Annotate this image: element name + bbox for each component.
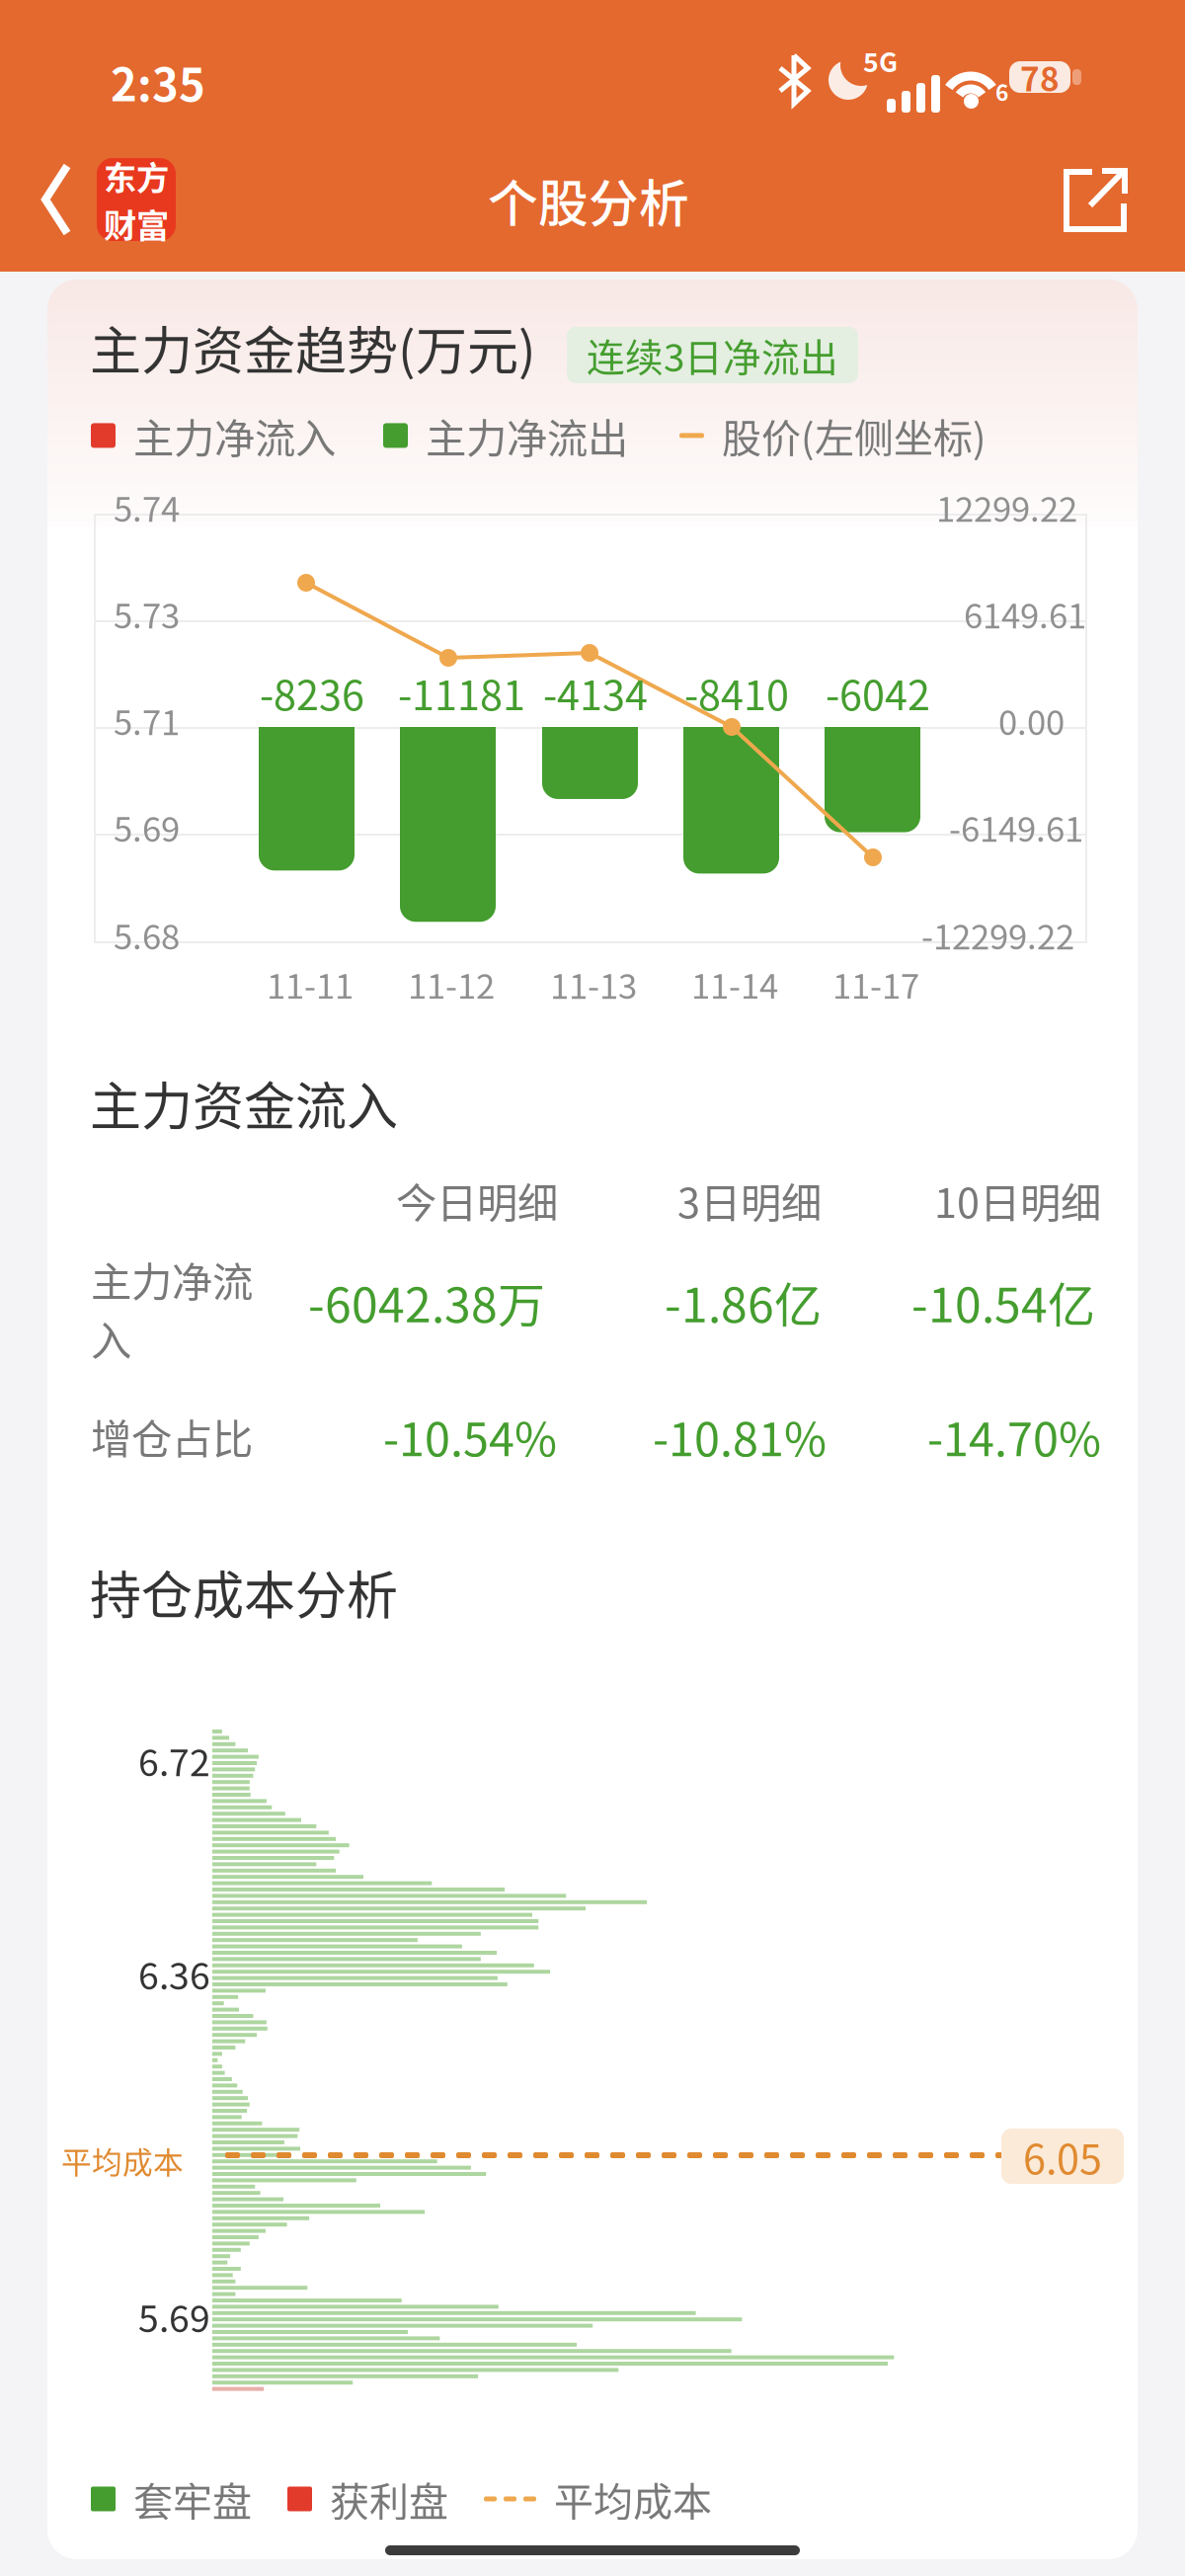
staticText: 5.68 [114,910,180,959]
staticText: 78 [1020,53,1060,101]
staticText: -11181 [398,663,525,722]
staticText: 财富 [104,200,169,247]
staticText: 东方 [104,152,169,200]
staticText: 6.05 [1023,2127,1102,2186]
staticText: 11-14 [691,959,778,1009]
button[interactable]: Share [0,128,1185,272]
staticText: 5.71 [114,695,180,745]
staticText: -6042 [826,663,930,722]
staticText: 6149.61 [964,589,1086,638]
staticText: 0.00 [998,695,1065,745]
button[interactable]: Back [0,128,1185,272]
staticText: 5G [863,41,898,80]
staticText: -10.54% [383,1403,557,1469]
staticText: 获利盘 [312,2470,448,2528]
staticText: 6 [995,75,1008,107]
staticText: 主力净流入 [116,406,336,465]
staticText: -8410 [684,663,789,722]
staticText: 主力资金趋势(万元) [90,310,536,385]
staticText: -1.86亿 [665,1267,822,1336]
staticText: 11-13 [550,959,637,1009]
staticText: -4134 [543,663,648,722]
staticText: 5.73 [114,589,180,638]
staticText: 套牢盘 [116,2470,252,2528]
staticText: 11-12 [408,959,495,1009]
staticText: 5.69 [114,802,180,852]
staticText: 股价(左侧坐标) [704,407,987,464]
staticText: 10日明细 [934,1170,1101,1230]
staticText: 个股分析 [488,164,689,236]
staticText: -8236 [260,663,364,722]
staticText: 6.36 [138,1947,210,2000]
staticText: 主力净流出 [408,406,628,465]
staticText: 今日明细 [396,1170,558,1230]
staticText: 11-11 [267,959,354,1009]
staticText: 5.74 [114,482,180,532]
staticText: 平均成本 [536,2470,712,2528]
staticText: 11-17 [832,959,919,1009]
staticText: -10.54亿 [911,1267,1095,1336]
staticText: -6042.38万 [308,1267,545,1336]
staticText: -14.70% [927,1403,1101,1469]
staticText: 2:35 [111,49,205,114]
staticText: -10.81% [653,1403,827,1469]
staticText: 主力净流入 [91,1249,253,1368]
staticText: 主力资金流入 [90,1066,398,1140]
staticText: 12299.22 [936,482,1077,532]
staticText: 连续3日净流出 [587,327,838,383]
staticText: 3日明细 [677,1170,822,1230]
staticText: -6149.61 [949,802,1083,852]
staticText: 6.72 [138,1733,210,1787]
staticText: 增仓占比 [91,1407,253,1466]
staticText: -12299.22 [921,910,1074,959]
staticText: 持仓成本分析 [90,1555,398,1629]
staticText: 平均成本 [61,2138,184,2182]
staticText: 5.69 [138,2290,210,2343]
